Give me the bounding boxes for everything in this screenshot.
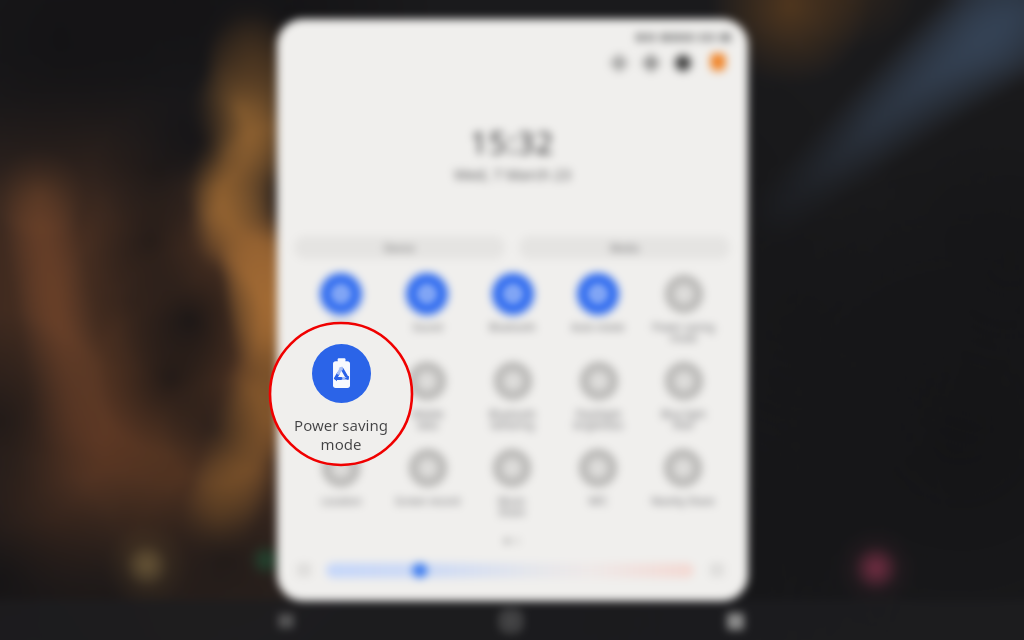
staticText: 15:32: [470, 121, 555, 163]
button[interactable]: Mobile data: [385, 360, 469, 440]
staticText: Power saving mode: [652, 320, 715, 345]
button[interactable]: Power saving mode: [641, 273, 725, 353]
button[interactable]: Battery saver: [707, 52, 729, 74]
button[interactable]: Search: [608, 52, 630, 74]
button[interactable]: Wi-Fi: [299, 273, 383, 353]
staticText: Sound: [412, 320, 443, 334]
staticText: Music Share: [498, 494, 526, 519]
button[interactable]: Sound: [385, 273, 469, 353]
button[interactable]: Power saving mode: [299, 360, 383, 440]
staticText: Wi-Fi: [330, 320, 353, 334]
button[interactable]: Settings: [672, 52, 694, 74]
button[interactable]: Blue light filter: [641, 360, 725, 440]
button[interactable]: Flashlight brightness: [556, 360, 640, 440]
staticText: Blue light filter: [661, 407, 706, 432]
staticText: NFC: [588, 494, 608, 508]
staticText: Mobile data: [411, 407, 444, 432]
button[interactable]: Recents: [272, 607, 300, 635]
button[interactable]: Location: [299, 447, 383, 527]
button[interactable]: Bluetooth tethering: [470, 360, 554, 440]
button[interactable]: Nearby Share: [641, 447, 725, 527]
button[interactable]: NFC: [556, 447, 640, 527]
staticText: Power saving mode: [294, 415, 388, 454]
button[interactable]: Home: [497, 607, 525, 635]
staticText: Bluetooth tethering: [489, 407, 536, 432]
button[interactable]: Add: [640, 52, 662, 74]
staticText: Nearby Share: [651, 494, 715, 508]
staticText: Power saving mode: [310, 407, 373, 432]
button[interactable]: Screen record: [385, 447, 469, 527]
staticText: Location: [321, 494, 362, 508]
staticText: Bluetooth: [489, 320, 536, 334]
button[interactable]: Back: [721, 607, 749, 635]
button[interactable]: Bluetooth: [470, 273, 554, 353]
button[interactable]: Media: [519, 236, 730, 259]
staticText: Flashlight brightness: [573, 407, 624, 432]
button[interactable]: Power saving mode: [270, 323, 412, 465]
staticText: Wed, 7 March 23: [454, 164, 572, 184]
staticText: Screen record: [395, 494, 460, 508]
staticText: Media: [610, 241, 640, 255]
button[interactable]: Device: [294, 236, 505, 259]
button[interactable]: Auto rotate: [556, 273, 640, 353]
button[interactable]: Music Share: [470, 447, 554, 527]
staticText: Device: [384, 241, 415, 255]
button[interactable]: Brightness: [326, 563, 694, 578]
staticText: Auto rotate: [571, 320, 625, 334]
